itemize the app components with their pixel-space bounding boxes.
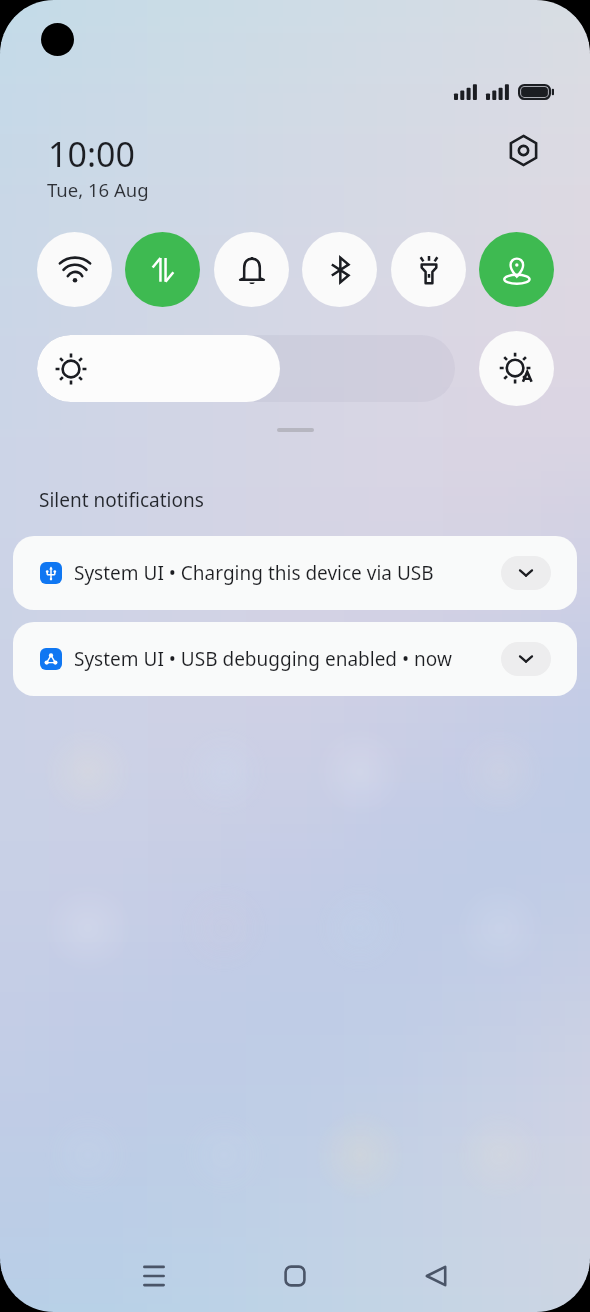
button[interactable]: Location [479, 232, 554, 307]
staticText: Tue, 16 Aug [47, 177, 149, 202]
staticText: System UI • USB debugging enabled • now [74, 646, 452, 672]
button[interactable]: Wi-Fi [37, 232, 112, 307]
button[interactable]: Settings [501, 128, 545, 172]
button[interactable]: Expand notification [501, 642, 551, 676]
button[interactable]: Bluetooth [302, 232, 377, 307]
button[interactable]: Flashlight [391, 232, 466, 307]
button[interactable]: Expand notification [501, 556, 551, 590]
button[interactable]: Mobile data [125, 232, 200, 307]
button[interactable]: System UI • Charging this device via USB [13, 536, 577, 610]
staticText: 10:00 [48, 131, 135, 177]
button[interactable]: Brightness [37, 335, 455, 402]
button[interactable]: Auto brightness [479, 331, 554, 406]
staticText: System UI • Charging this device via USB [74, 560, 434, 586]
staticText: Silent notifications [39, 487, 204, 513]
button[interactable]: Ring [214, 232, 289, 307]
button[interactable]: Back [406, 1236, 466, 1312]
button[interactable]: System UI • USB debugging enabled • now [13, 622, 577, 696]
button[interactable]: Recents [124, 1236, 184, 1312]
button[interactable]: Home [265, 1236, 325, 1312]
